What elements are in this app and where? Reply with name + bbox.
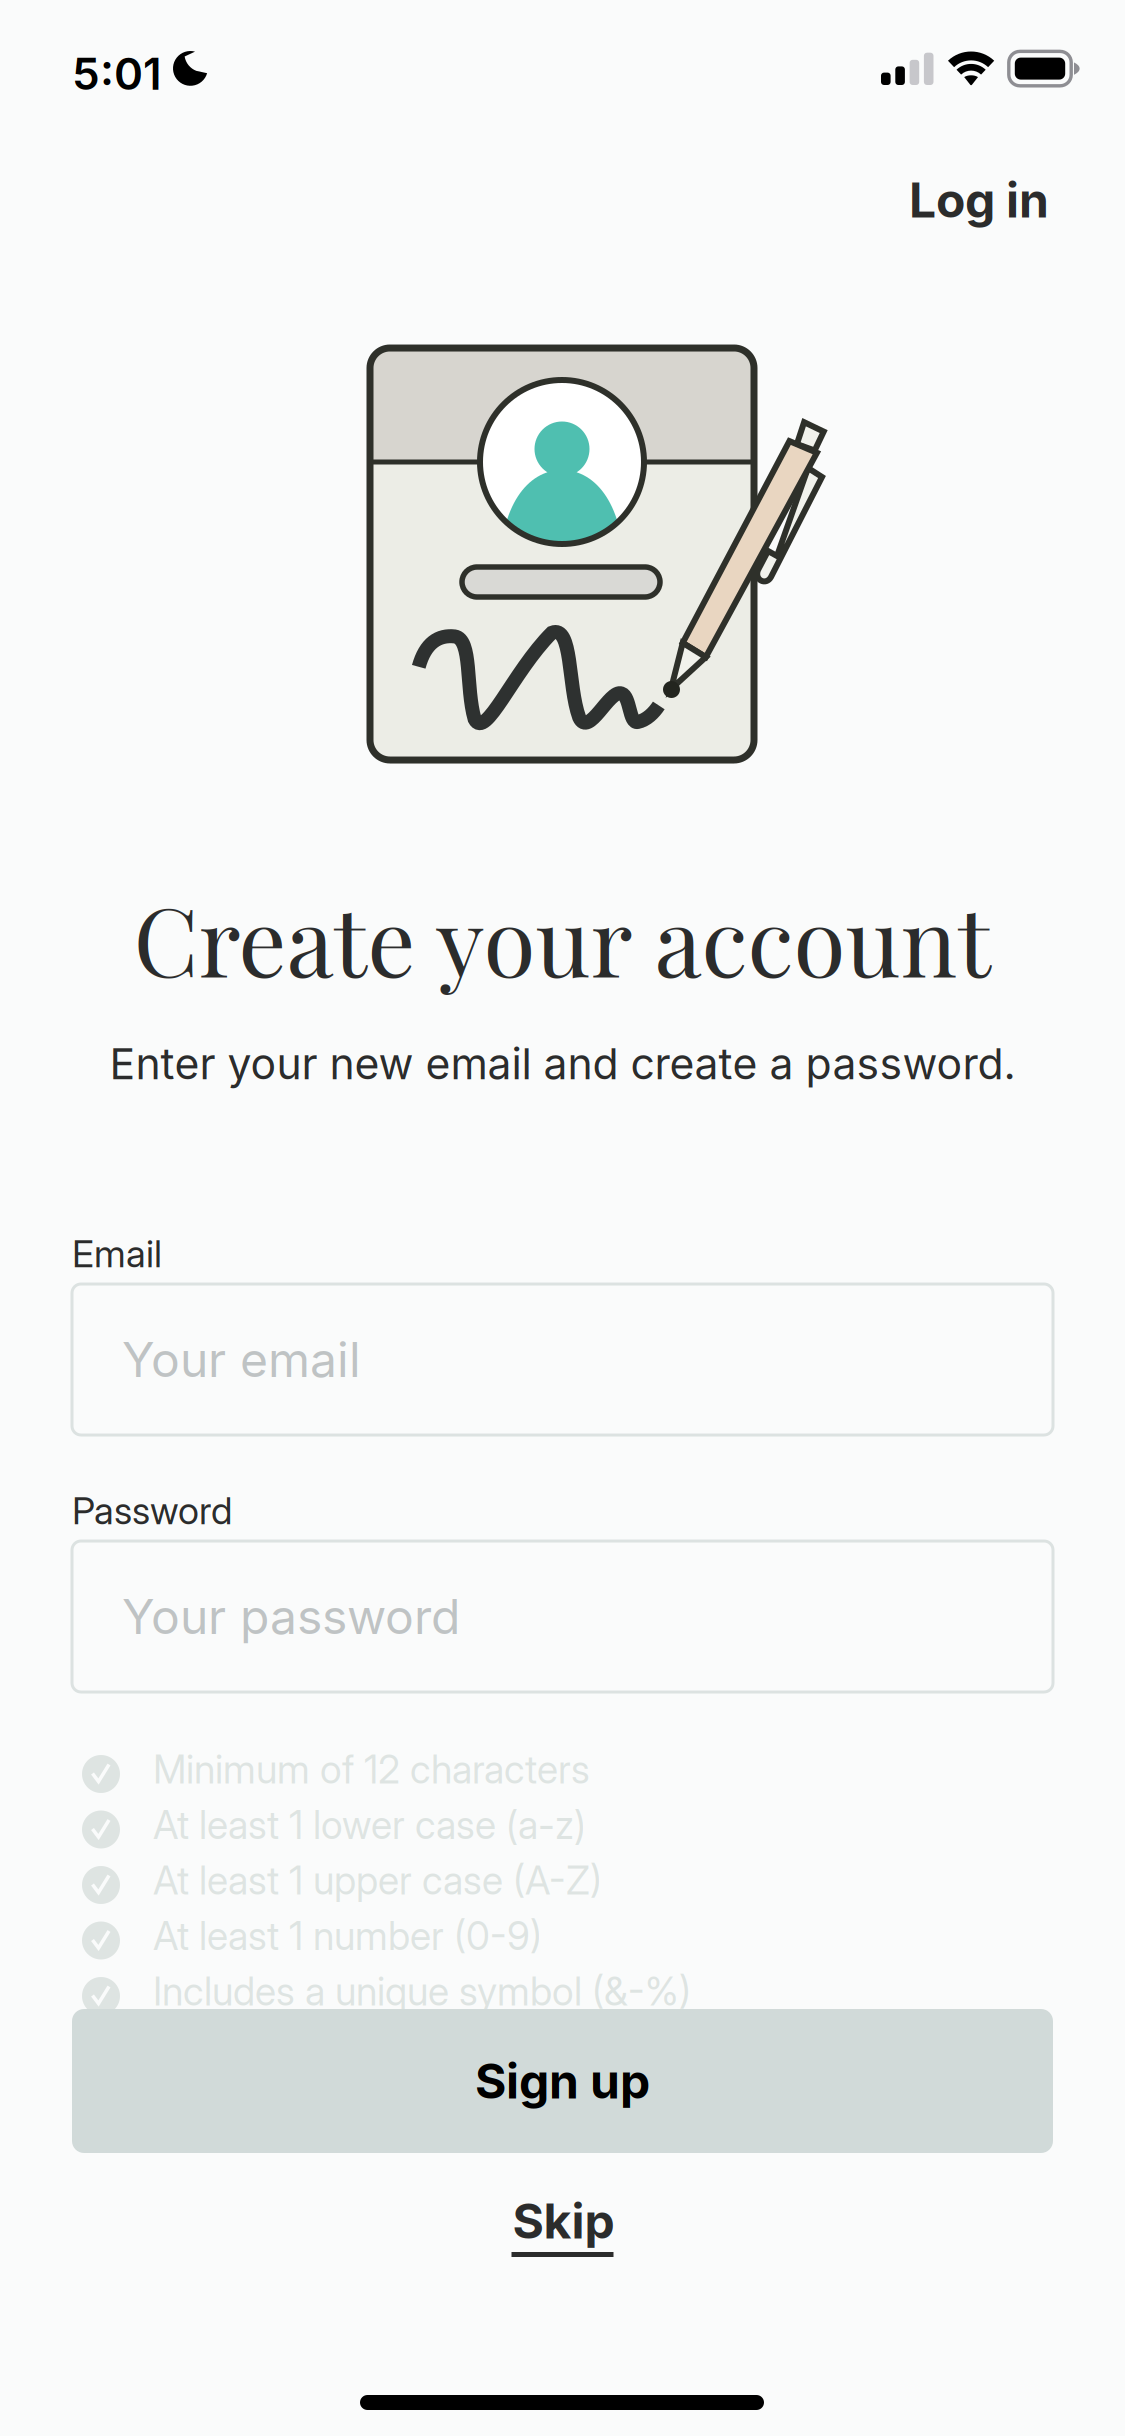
staticText: Includes a unique symbol (&-%) — [153, 1968, 691, 2015]
button[interactable]: Your password — [72, 1541, 1053, 1692]
button[interactable]: Your email — [72, 1284, 1053, 1435]
staticText: Sign up — [475, 2052, 650, 2110]
staticText: Create your account — [133, 875, 991, 1001]
staticText: Your email — [122, 1330, 361, 1389]
staticText: At least 1 lower case (a-z) — [153, 1801, 586, 1848]
staticText: Skip — [512, 2192, 614, 2250]
staticText: Enter your new email and create a passwo… — [109, 1038, 1015, 1090]
staticText: Email — [72, 1231, 162, 1276]
staticText: At least 1 upper case (A-Z) — [153, 1857, 602, 1904]
button[interactable]: Skip — [471, 2160, 653, 2284]
staticText: Your password — [122, 1587, 460, 1646]
staticText: Password — [72, 1488, 232, 1533]
staticText: At least 1 number (0-9) — [153, 1912, 542, 1959]
staticText: Log in — [909, 171, 1049, 229]
staticText: 5:01 — [72, 47, 162, 100]
button[interactable]: Sign up — [72, 2009, 1053, 2153]
button[interactable]: Log in — [883, 149, 1075, 251]
staticText: Minimum of 12 characters — [153, 1746, 590, 1793]
